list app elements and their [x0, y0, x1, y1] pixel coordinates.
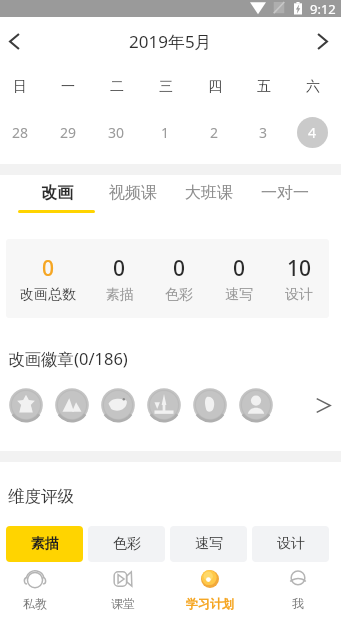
staticText: 维度评级: [8, 486, 74, 507]
staticText: 0: [42, 254, 55, 283]
button[interactable]: Badge 2: [55, 388, 89, 422]
staticText: 速写: [195, 535, 223, 553]
button[interactable]: Previous month: [0, 17, 28, 66]
button[interactable]: 学习计划: [168, 563, 252, 621]
button[interactable]: 30: [101, 117, 132, 148]
staticText: 29: [60, 123, 77, 142]
button[interactable]: 0: [209, 254, 269, 304]
button[interactable]: 素描: [6, 526, 83, 562]
staticText: 素描: [31, 535, 59, 553]
button[interactable]: Badge 6: [239, 388, 273, 422]
staticText: 一对一: [261, 183, 309, 203]
button[interactable]: 4: [297, 117, 328, 148]
staticText: 2: [210, 123, 219, 142]
button[interactable]: 速写: [170, 526, 247, 562]
staticText: 改画: [41, 183, 73, 203]
button[interactable]: Next month: [303, 17, 341, 66]
button[interactable]: 28: [5, 117, 36, 148]
staticText: 速写: [225, 286, 253, 304]
staticText: 设计: [285, 286, 313, 304]
staticText: 色彩: [165, 286, 193, 304]
button[interactable]: Badge 1: [9, 388, 43, 422]
staticText: 9:12: [310, 0, 336, 17]
staticText: 五: [257, 78, 271, 96]
button[interactable]: 0: [149, 254, 209, 304]
button[interactable]: 3: [248, 117, 279, 148]
staticText: 色彩: [113, 535, 141, 553]
staticText: 改画总数: [20, 286, 76, 304]
button[interactable]: Badge 5: [193, 388, 227, 422]
staticText: 4: [308, 123, 317, 142]
staticText: 学习计划: [186, 596, 234, 611]
staticText: 0: [113, 254, 126, 283]
staticText: 设计: [277, 535, 305, 553]
button[interactable]: 我: [256, 563, 340, 621]
button[interactable]: 0: [90, 254, 149, 304]
staticText: 四: [208, 78, 222, 96]
staticText: 3: [259, 123, 268, 142]
button[interactable]: 视频课: [95, 175, 171, 217]
button[interactable]: 10: [269, 254, 329, 304]
button[interactable]: 私教: [0, 563, 77, 621]
button[interactable]: 课堂: [81, 563, 165, 621]
staticText: 课堂: [111, 596, 135, 611]
button[interactable]: 0: [6, 254, 90, 304]
staticText: 我: [292, 596, 304, 611]
staticText: 三: [159, 78, 173, 96]
staticText: 视频课: [109, 183, 157, 203]
staticText: 二: [110, 78, 124, 96]
staticText: 日: [13, 78, 27, 96]
button[interactable]: 色彩: [88, 526, 165, 562]
staticText: 改画徽章(0/186): [8, 347, 128, 370]
button[interactable]: Badge 4: [147, 388, 181, 422]
staticText: 素描: [106, 286, 134, 304]
button[interactable]: More badges: [311, 393, 335, 417]
staticText: 六: [306, 78, 320, 96]
button[interactable]: 29: [53, 117, 84, 148]
staticText: 1: [161, 123, 170, 142]
staticText: 0: [173, 254, 186, 283]
staticText: 私教: [23, 596, 47, 611]
button[interactable]: 一对一: [247, 175, 323, 217]
button[interactable]: 2: [199, 117, 230, 148]
staticText: 一: [61, 78, 75, 96]
button[interactable]: 改画: [18, 175, 95, 217]
staticText: 大班课: [185, 183, 233, 203]
button[interactable]: 1: [150, 117, 181, 148]
button[interactable]: 大班课: [171, 175, 247, 217]
staticText: 28: [12, 123, 29, 142]
staticText: 30: [108, 123, 125, 142]
staticText: 10: [287, 254, 312, 283]
staticText: 2019年5月: [129, 30, 212, 53]
button[interactable]: Badge 3: [101, 388, 135, 422]
staticText: 0: [233, 254, 246, 283]
button[interactable]: 设计: [252, 526, 329, 562]
